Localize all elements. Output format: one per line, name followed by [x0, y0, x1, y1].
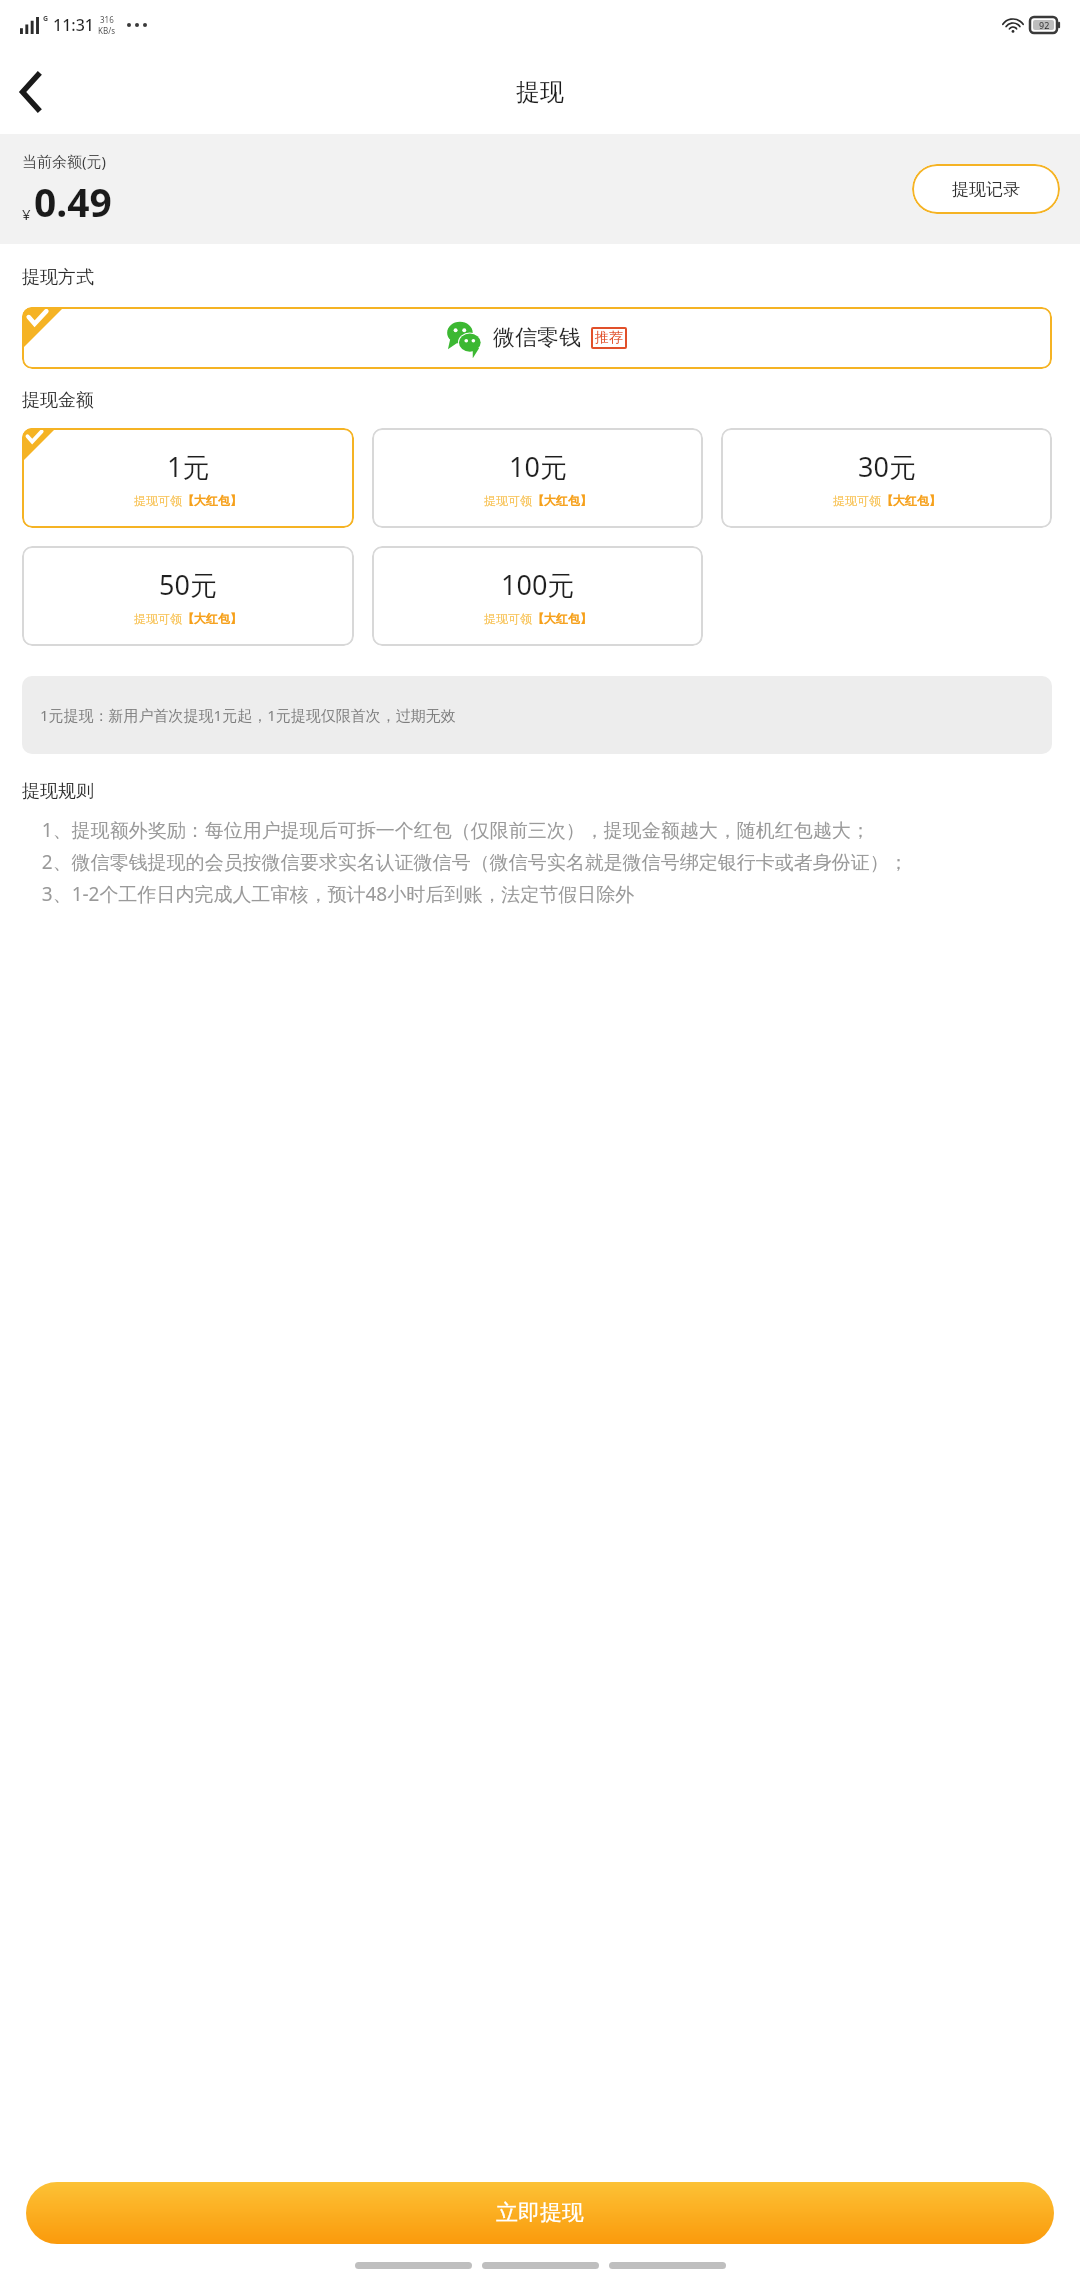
- staticText: 100元: [501, 566, 575, 603]
- staticText: 提现可领: [484, 611, 532, 626]
- staticText: 提现方式: [22, 266, 94, 289]
- staticText: 10元: [509, 448, 567, 485]
- staticText: 提现可领: [484, 493, 532, 508]
- staticText: 【大红包】: [182, 493, 242, 508]
- button[interactable]: 50元: [22, 546, 354, 646]
- button[interactable]: Navigation: [355, 2262, 472, 2269]
- staticText: KB/s: [98, 25, 115, 36]
- staticText: 1元提现：新用户首次提现1元起，1元提现仅限首次，过期无效: [40, 705, 456, 725]
- staticText: 提现金额: [22, 389, 94, 412]
- staticText: 立即提现: [496, 2199, 584, 2227]
- staticText: 0.49: [34, 175, 112, 228]
- button[interactable]: 10元: [372, 428, 703, 528]
- staticText: 1元: [167, 448, 210, 485]
- staticText: ¥: [22, 204, 31, 224]
- staticText: 316: [100, 14, 114, 25]
- button[interactable]: 1元: [22, 428, 354, 528]
- button[interactable]: 立即提现: [26, 2182, 1054, 2244]
- button[interactable]: 微信零钱: [22, 307, 1052, 369]
- staticText: 【大红包】: [182, 611, 242, 626]
- staticText: 微信零钱: [493, 324, 581, 352]
- staticText: 【大红包】: [532, 493, 592, 508]
- staticText: 【大红包】: [881, 493, 941, 508]
- staticText: 提现可领: [134, 493, 182, 508]
- button[interactable]: Navigation: [609, 2262, 726, 2269]
- staticText: 11:31: [53, 14, 94, 36]
- button[interactable]: Back: [0, 61, 62, 123]
- staticText: 提现可领: [134, 611, 182, 626]
- staticText: 提现记录: [952, 179, 1020, 200]
- staticText: 提现可领: [833, 493, 881, 508]
- staticText: 50元: [159, 566, 217, 603]
- staticText: 提现: [516, 77, 564, 107]
- staticText: 92: [1039, 19, 1050, 31]
- button[interactable]: Navigation: [482, 2262, 599, 2269]
- button[interactable]: 提现记录: [912, 164, 1060, 214]
- staticText: 推荐: [595, 329, 623, 347]
- staticText: 1、提现额外奖励：每位用户提现后可拆一个红包（仅限前三次），提现金额越大，随机红…: [22, 817, 908, 907]
- staticText: 提现规则: [22, 780, 94, 803]
- staticText: G: [43, 14, 49, 24]
- staticText: 当前余额(元): [22, 151, 107, 171]
- staticText: 【大红包】: [532, 611, 592, 626]
- staticText: 30元: [858, 448, 916, 485]
- button[interactable]: 100元: [372, 546, 703, 646]
- button[interactable]: 30元: [721, 428, 1052, 528]
